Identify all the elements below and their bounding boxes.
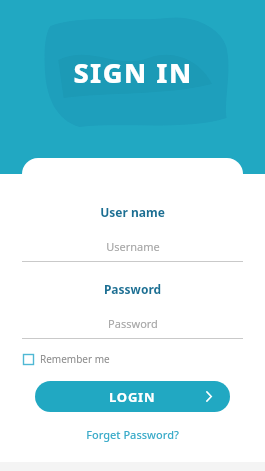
staticText: Remember me xyxy=(40,352,110,366)
staticText: Username xyxy=(106,239,160,254)
staticText: LOGIN xyxy=(109,388,156,406)
staticText: SIGN IN xyxy=(73,54,193,91)
staticText: Forget Password? xyxy=(86,427,179,442)
button[interactable]: LOGIN xyxy=(35,381,230,412)
button[interactable]: Username xyxy=(22,239,243,254)
staticText: Password xyxy=(108,316,158,331)
button[interactable]: Password xyxy=(22,316,243,331)
button[interactable]: Remember me xyxy=(22,350,111,368)
button[interactable]: Forget Password? xyxy=(0,427,265,442)
staticText: User name xyxy=(0,204,265,220)
staticText: Password xyxy=(0,281,265,297)
